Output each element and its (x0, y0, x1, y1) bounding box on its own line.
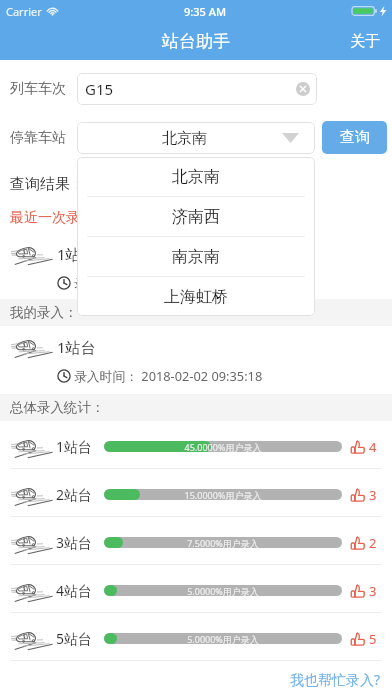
staticText: 录入时间： 2018-02-02 09:35:18 (74, 274, 263, 291)
other: Like (351, 536, 365, 550)
other: Like (351, 488, 365, 502)
staticText: 5.0000%用户录入 (104, 633, 342, 644)
button[interactable]: 2站台 (0, 469, 392, 516)
staticText: 5站台 (56, 629, 93, 648)
staticText: 北京南 (172, 167, 220, 187)
staticText: 2站台 (56, 485, 93, 504)
button[interactable]: 1站台 (0, 421, 392, 468)
staticText: 4 (369, 438, 377, 456)
staticText: 1站台 (56, 437, 93, 456)
button[interactable]: 北京南 (77, 157, 315, 196)
staticText: 总体录入统计： (10, 399, 105, 416)
other: Like (351, 440, 365, 454)
staticText: 最近一次录入： (10, 209, 108, 227)
staticText: 45.0000%用户录入 (104, 441, 342, 452)
staticText: 济南西 (172, 207, 220, 227)
staticText: 北京南 (162, 129, 207, 148)
button[interactable]: 北京南 (77, 122, 315, 154)
button[interactable]: 3站台 (0, 517, 392, 564)
button[interactable]: 济南西 (77, 197, 315, 236)
staticText: 2 (369, 534, 377, 552)
staticText: 站台助手 (162, 31, 230, 52)
other: Like (351, 632, 365, 646)
button[interactable]: 4站台 (0, 565, 392, 612)
button[interactable]: 关于 (338, 22, 392, 60)
staticText: 4站台 (56, 581, 93, 600)
staticText: 我的录入： (10, 304, 78, 321)
button[interactable]: 查询 (322, 121, 387, 154)
button[interactable]: G15 (77, 73, 317, 105)
staticText: 3 (369, 582, 377, 600)
staticText: 3站台 (56, 533, 93, 552)
button[interactable]: 上海虹桥 (77, 277, 315, 316)
staticText: 5.0000%用户录入 (104, 585, 342, 596)
staticText: 停靠车站 (10, 129, 66, 147)
other: Clear text (296, 82, 310, 96)
staticText: 南京南 (172, 247, 220, 267)
staticText: 7.5000%用户录入 (104, 537, 342, 548)
staticText: 3 (369, 486, 377, 504)
staticText: 上海虹桥 (164, 287, 228, 307)
staticText: 查询 (340, 128, 370, 147)
staticText: 9:35 AM (184, 4, 227, 19)
staticText: 录入时间： 2018-02-02 09:35:18 (74, 367, 263, 384)
staticText: 1站台 (57, 244, 96, 264)
staticText: Carrier (6, 4, 42, 19)
staticText: 15.0000%用户录入 (104, 489, 342, 500)
button[interactable]: 我也帮忙录入? (288, 668, 383, 691)
staticText: 列车车次 (10, 80, 66, 98)
staticText: 查询结果： (10, 175, 85, 194)
button[interactable]: 南京南 (77, 237, 315, 276)
staticText: G15 (85, 79, 114, 99)
staticText: 5 (369, 630, 377, 648)
staticText: 我也帮忙录入? (290, 670, 381, 689)
button[interactable]: 5站台 (0, 613, 392, 660)
staticText: 1站台 (57, 337, 96, 357)
staticText: 关于 (350, 32, 380, 51)
other: Like (351, 584, 365, 598)
